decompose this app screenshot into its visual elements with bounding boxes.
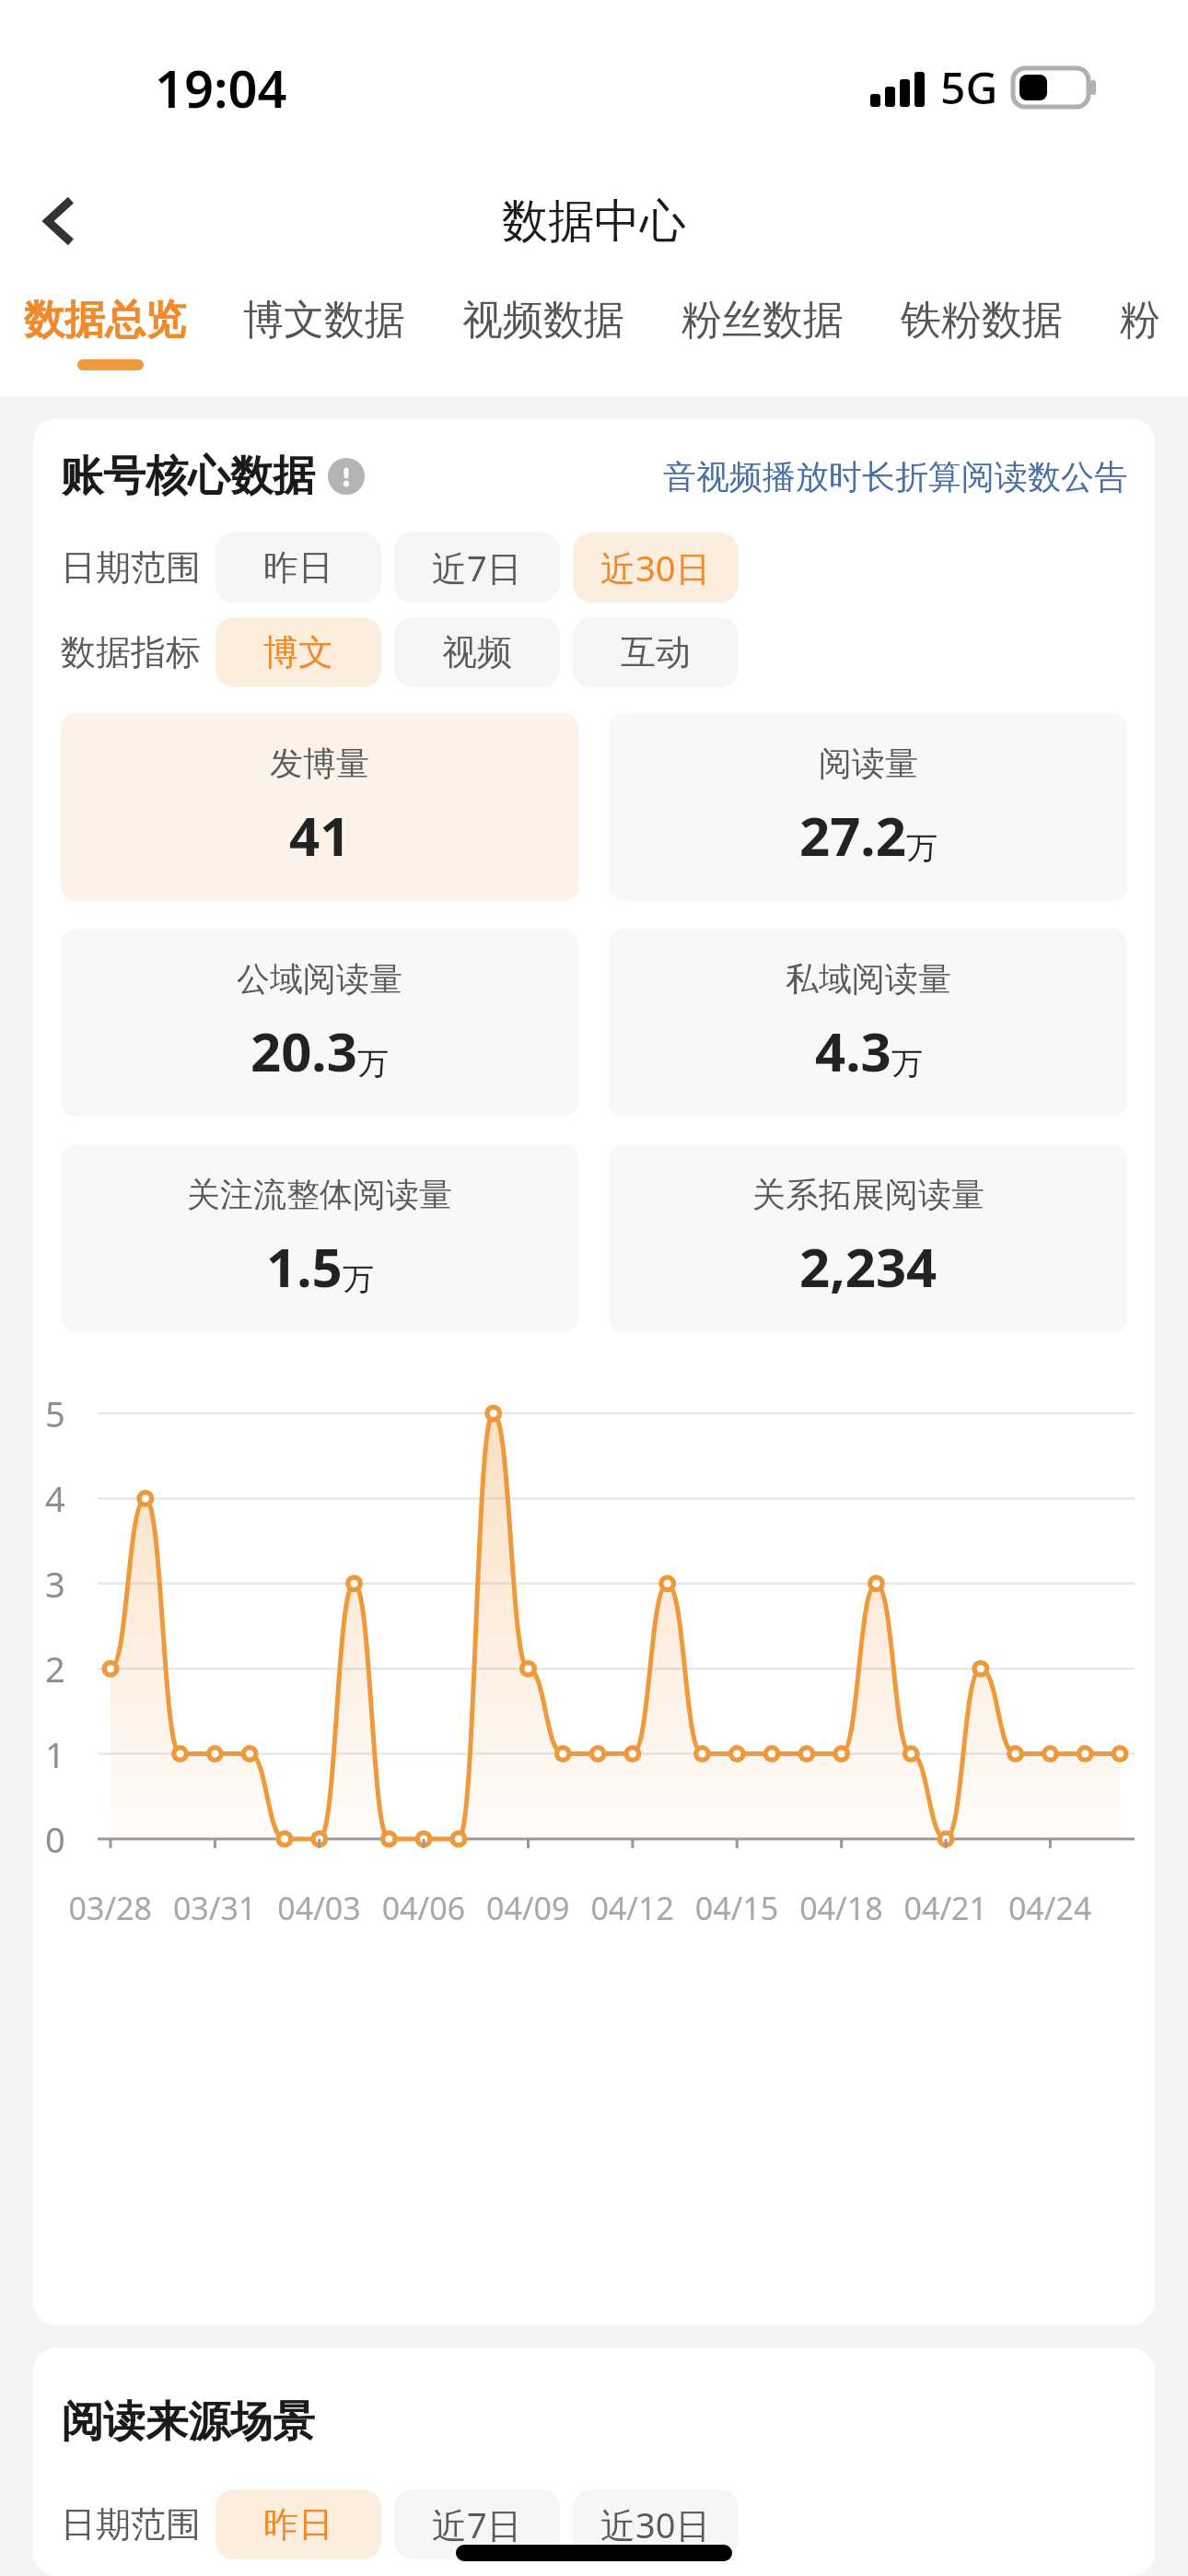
staticText: 关系拓展阅读量: [752, 1174, 984, 1215]
button[interactable]: Info: [328, 458, 365, 495]
button[interactable]: 博文数据: [243, 276, 462, 396]
staticText: 昨日: [263, 545, 333, 590]
button[interactable]: 关系拓展阅读量: [609, 1144, 1127, 1332]
button[interactable]: 视频数据: [462, 276, 681, 396]
button[interactable]: 音视频播放时长折算阅读数公告: [663, 456, 1127, 498]
staticText: 2,234: [799, 1230, 938, 1303]
staticText: 万: [343, 1259, 374, 1299]
button[interactable]: 公域阅读量: [61, 929, 578, 1117]
button[interactable]: 粉丝: [1120, 276, 1188, 396]
staticText: 近7日: [432, 544, 522, 591]
staticText: 阅读量: [819, 743, 918, 784]
staticText: 博文数据: [243, 295, 405, 345]
staticText: 音视频播放时长折算阅读数公告: [663, 456, 1127, 498]
button[interactable]: 昨日: [215, 533, 381, 603]
staticText: 近30日: [600, 2500, 711, 2548]
button[interactable]: 近7日: [394, 2489, 560, 2559]
staticText: 41: [289, 799, 351, 872]
button[interactable]: 昨日: [215, 2489, 381, 2559]
staticText: 数据中心: [502, 193, 686, 251]
button[interactable]: 发博量: [61, 713, 578, 901]
button[interactable]: 近30日: [573, 533, 739, 603]
staticText: 互动: [621, 630, 691, 674]
staticText: 铁粉数据: [901, 295, 1063, 345]
staticText: 27.2: [799, 799, 906, 872]
staticText: 日期范围: [61, 2502, 201, 2547]
staticText: 4.3: [815, 1014, 891, 1087]
staticText: 昨日: [263, 2502, 333, 2547]
button[interactable]: Back: [13, 175, 105, 267]
staticText: 账号核心数据: [61, 450, 315, 503]
staticText: 20.3: [250, 1014, 357, 1087]
staticText: 数据指标: [61, 630, 201, 674]
button[interactable]: 近7日: [394, 533, 560, 603]
button[interactable]: 互动: [573, 617, 739, 687]
staticText: 近30日: [600, 544, 711, 591]
button[interactable]: 粉丝数据: [681, 276, 901, 396]
button[interactable]: 近30日: [573, 2489, 739, 2559]
staticText: 1.5: [266, 1230, 343, 1303]
button[interactable]: 阅读量: [609, 713, 1127, 901]
staticText: 视频数据: [462, 295, 624, 345]
staticText: 数据总览: [24, 295, 186, 345]
button[interactable]: 视频: [394, 617, 560, 687]
button[interactable]: 博文: [215, 617, 381, 687]
button[interactable]: 数据总览: [24, 276, 243, 396]
staticText: 视频: [442, 630, 512, 674]
staticText: 博文: [263, 630, 333, 674]
button[interactable]: 铁粉数据: [901, 276, 1120, 396]
staticText: 19:04: [155, 53, 287, 123]
staticText: 阅读来源场景: [61, 2395, 315, 2449]
button[interactable]: 私域阅读量: [609, 929, 1127, 1117]
staticText: 日期范围: [61, 545, 201, 590]
staticText: 发博量: [270, 743, 369, 784]
staticText: 私域阅读量: [786, 958, 951, 1000]
staticText: 万: [906, 828, 938, 868]
staticText: 万: [357, 1044, 389, 1083]
staticText: 公域阅读量: [237, 958, 402, 1000]
button[interactable]: 关注流整体阅读量: [61, 1144, 578, 1332]
staticText: 5G: [940, 57, 998, 117]
staticText: 关注流整体阅读量: [187, 1174, 452, 1215]
staticText: 粉丝数据: [681, 295, 844, 345]
staticText: 近7日: [432, 2500, 522, 2548]
staticText: 粉丝: [1120, 295, 1188, 345]
staticText: 万: [891, 1044, 923, 1083]
